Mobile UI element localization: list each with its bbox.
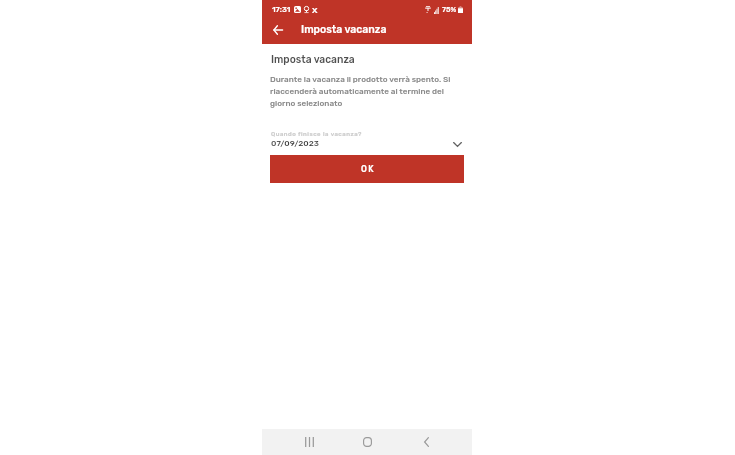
other: Battery 75 percent [458,6,463,13]
button[interactable]: Back [267,19,289,41]
button[interactable]: Quando finisce la vacanza? [270,128,464,150]
other: Screenshot [294,6,301,13]
staticText: Imposta vacanza [271,53,355,65]
button[interactable]: Back [415,431,437,453]
staticText: Imposta vacanza [301,23,387,35]
other: Location [304,6,309,13]
button[interactable]: Home [356,431,378,453]
staticText: X [312,5,318,15]
staticText: Quando finisce la vacanza? [271,130,362,137]
staticText: OK [361,164,375,174]
staticText: Durante la vacanza il prodotto verrà spe… [270,74,456,108]
button[interactable]: Recent apps [298,431,320,453]
staticText: 75% [442,5,457,14]
button[interactable]: OK [270,155,464,183]
staticText: 07/09/2023 [271,138,319,148]
staticText: 17:31 [272,5,291,14]
